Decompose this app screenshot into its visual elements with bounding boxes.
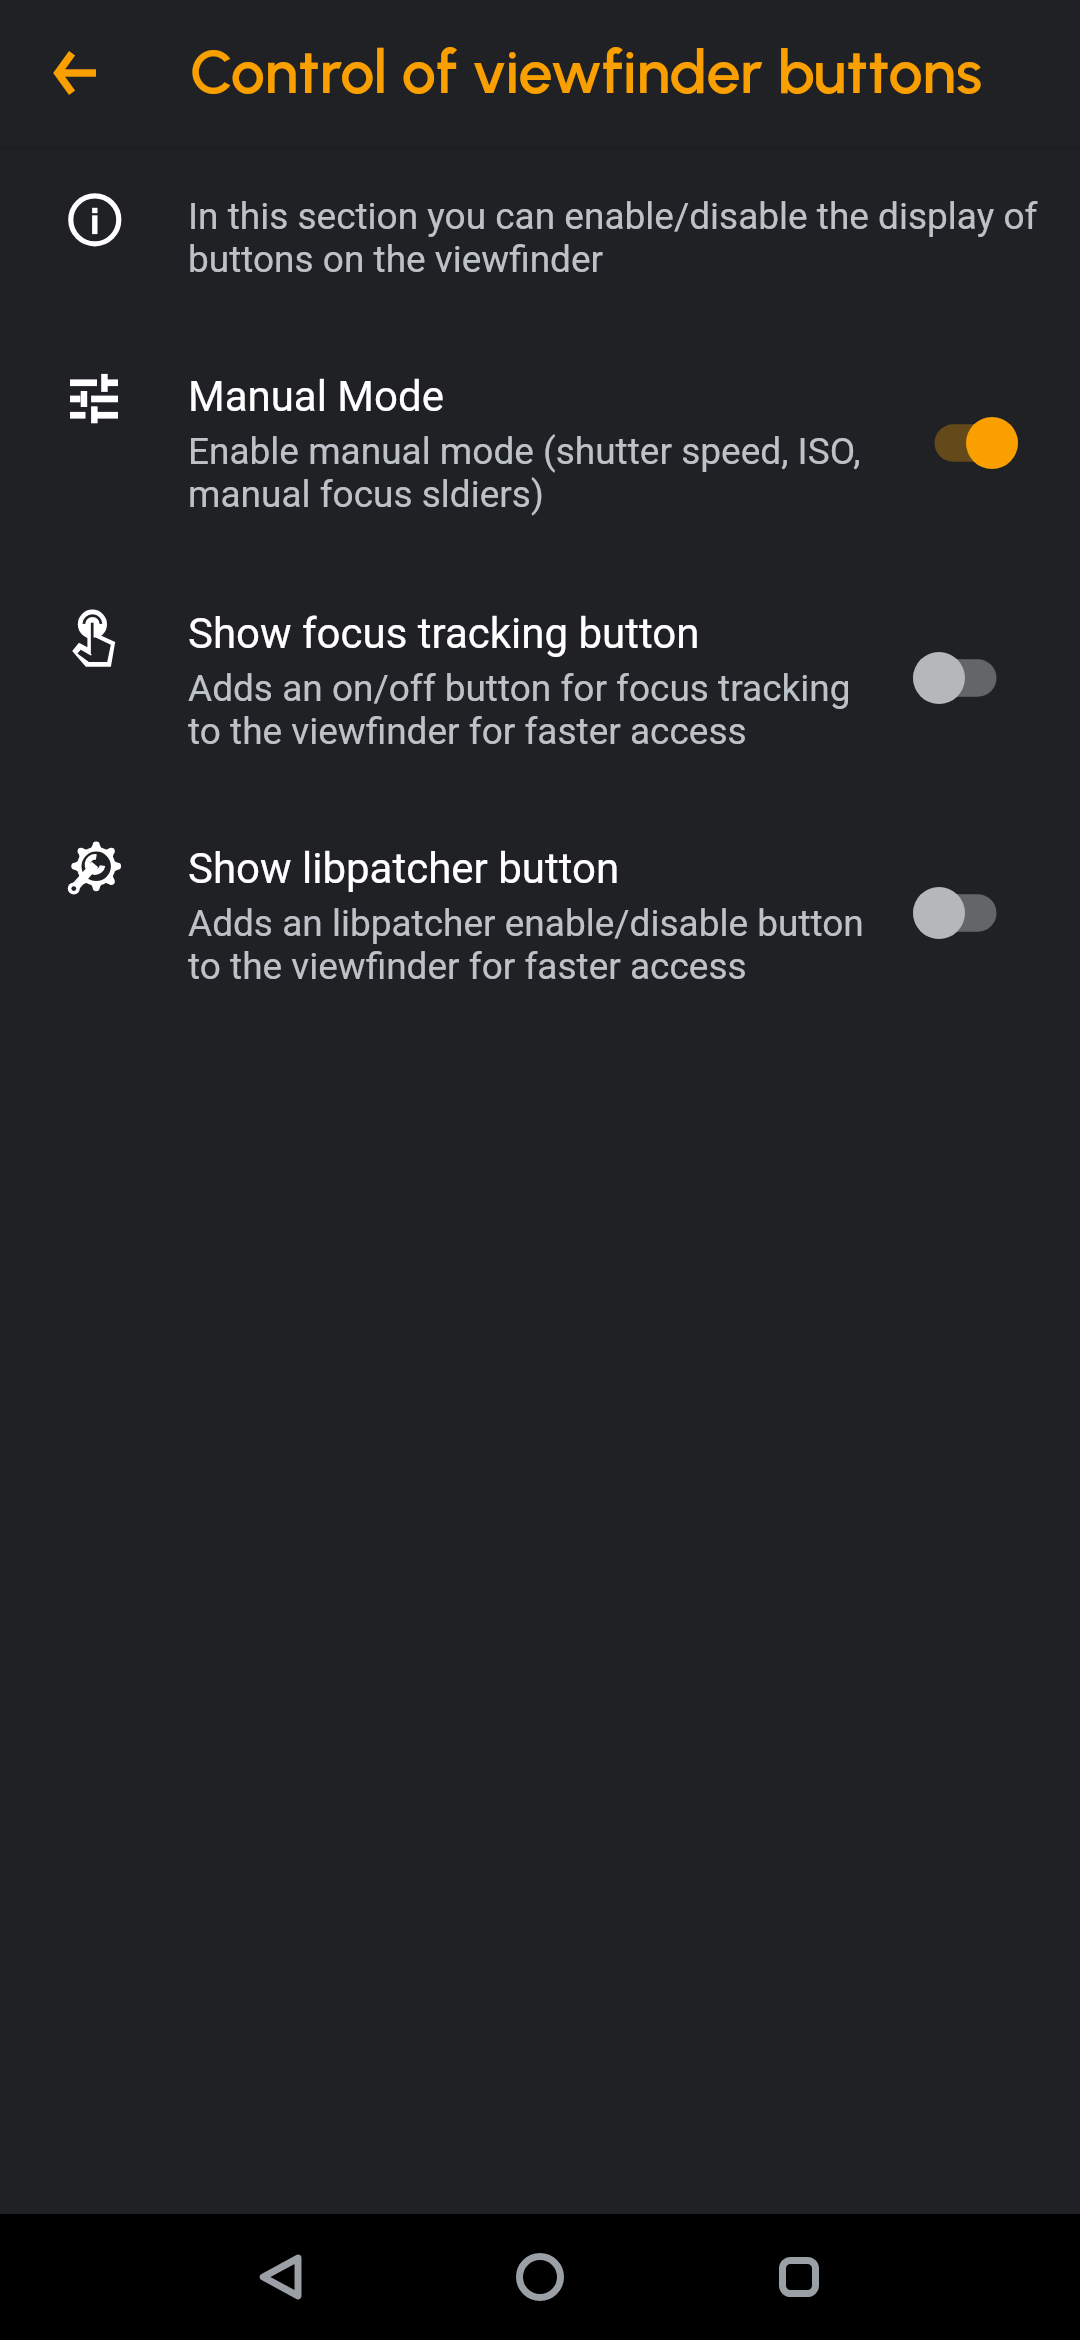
staticText: Show focus tracking button	[188, 609, 700, 658]
staticText: Manual Mode	[188, 372, 444, 421]
staticText: Adds an libpatcher enable/disable button…	[188, 902, 864, 988]
button[interactable]: Enabled	[913, 417, 1019, 469]
staticText: Adds an on/off button for focus tracking…	[188, 667, 851, 753]
button[interactable]: Show libpatcher button	[0, 822, 1080, 1022]
staticText: In this section you can enable/disable t…	[188, 195, 1038, 281]
button[interactable]: Manual Mode	[0, 352, 1080, 552]
button[interactable]: Disabled	[911, 652, 1017, 704]
button[interactable]: Back	[232, 2229, 328, 2325]
button[interactable]: Home	[492, 2229, 588, 2325]
button[interactable]: Navigate up	[40, 38, 110, 108]
button[interactable]: Disabled	[911, 887, 1017, 939]
button[interactable]: Show focus tracking button	[0, 587, 1080, 787]
staticText: Control of viewfinder buttons	[190, 35, 983, 108]
button[interactable]: Recent apps	[751, 2229, 847, 2325]
staticText: Show libpatcher button	[188, 844, 620, 893]
staticText: Enable manual mode (shutter speed, ISO, …	[188, 430, 861, 516]
